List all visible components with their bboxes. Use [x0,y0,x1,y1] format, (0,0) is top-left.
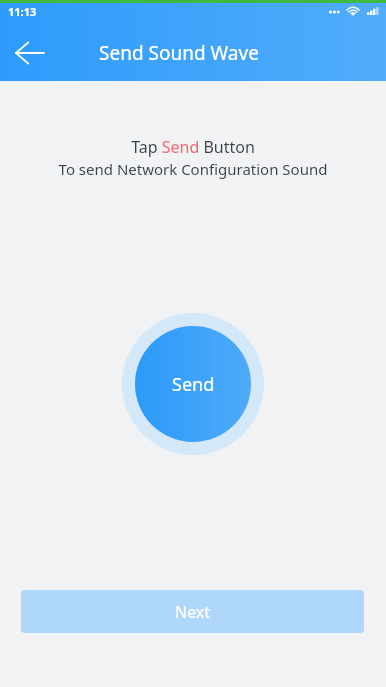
staticText: Tap Send Button [0,136,386,158]
button[interactable]: Back [0,24,56,81]
staticText: To send Network Configuration Sound [0,159,386,179]
button[interactable]: Next [21,590,364,633]
staticText: Next [175,601,211,623]
staticText: Send Sound Wave [99,40,259,66]
staticText: 11:13 [8,4,37,19]
staticText: Send [172,372,215,397]
button[interactable]: Send [122,313,264,455]
